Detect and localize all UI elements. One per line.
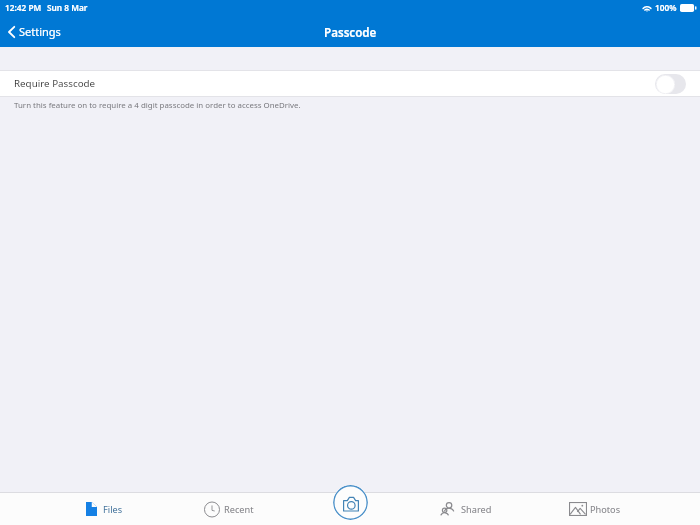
button[interactable]: Require Passcode: [0, 71, 700, 96]
button[interactable]: Shared: [406, 493, 526, 525]
staticText: Turn this feature on to require a 4 digi…: [14, 100, 301, 111]
staticText: Passcode: [324, 25, 377, 41]
staticText: Recent: [224, 503, 254, 516]
button[interactable]: Settings: [0, 20, 73, 43]
staticText: Require Passcode: [14, 77, 96, 90]
staticText: 100%: [655, 2, 677, 13]
button[interactable]: Require Passcode toggle: [655, 74, 686, 94]
button[interactable]: Files: [44, 493, 164, 525]
staticText: Files: [103, 503, 123, 516]
staticText: Sun 8 Mar: [47, 2, 88, 13]
staticText: Photos: [590, 503, 621, 516]
button[interactable]: Camera: [333, 485, 368, 520]
staticText: 12:42 PM: [5, 2, 42, 13]
staticText: Settings: [19, 24, 61, 39]
button[interactable]: Photos: [535, 493, 655, 525]
staticText: Shared: [461, 503, 492, 516]
button[interactable]: Recent: [169, 493, 289, 525]
